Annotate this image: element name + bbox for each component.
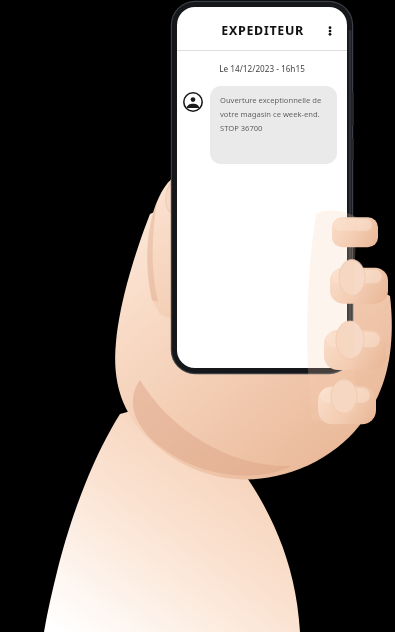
button[interactable]: Sender avatar	[183, 86, 339, 164]
staticText: Le 14/12/2023 - 16h15	[177, 63, 347, 74]
other: Sender avatar	[183, 92, 203, 112]
staticText: EXPEDITEUR	[221, 22, 304, 39]
button[interactable]: More options	[319, 20, 341, 42]
staticText: STOP 36700	[220, 123, 263, 133]
staticText: votre magasin ce week-end.	[220, 109, 320, 119]
staticText: Ouverture exceptionnelle de	[220, 95, 322, 105]
button[interactable]: Ouverture exceptionnelle de	[210, 86, 337, 164]
